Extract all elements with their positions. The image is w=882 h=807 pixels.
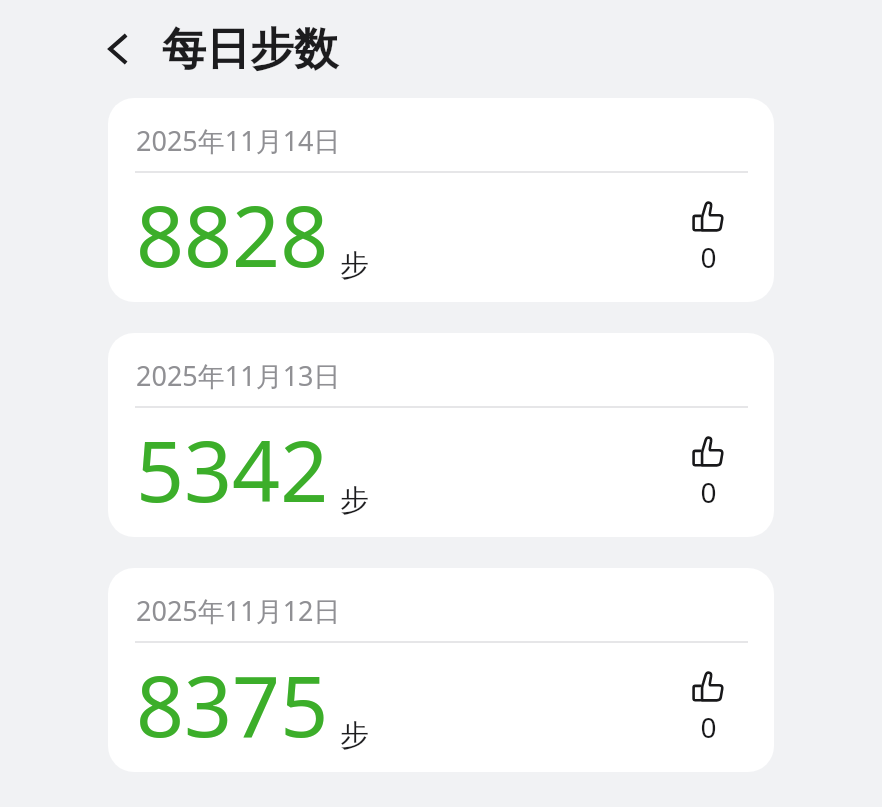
staticText: 2025年11月12日 <box>136 592 341 629</box>
staticText: 每日步数 <box>162 22 338 77</box>
staticText: 0 <box>700 473 717 511</box>
staticText: 步 <box>340 482 369 519</box>
staticText: 5342 <box>136 412 329 526</box>
button[interactable]: Like <box>680 435 736 511</box>
button[interactable]: Like <box>680 670 736 746</box>
staticText: 0 <box>700 238 717 276</box>
button[interactable]: 2025年11月13日 <box>108 333 774 537</box>
button[interactable]: 2025年11月12日 <box>108 568 774 772</box>
staticText: 步 <box>340 247 369 284</box>
staticText: 步 <box>340 717 369 754</box>
staticText: 2025年11月13日 <box>136 357 341 394</box>
button[interactable]: Like <box>680 200 736 276</box>
button[interactable]: Back <box>92 23 144 75</box>
staticText: 8375 <box>136 647 329 761</box>
staticText: 2025年11月14日 <box>136 122 341 159</box>
button[interactable]: 2025年11月14日 <box>108 98 774 302</box>
staticText: 0 <box>700 708 717 746</box>
staticText: 8828 <box>136 177 329 291</box>
